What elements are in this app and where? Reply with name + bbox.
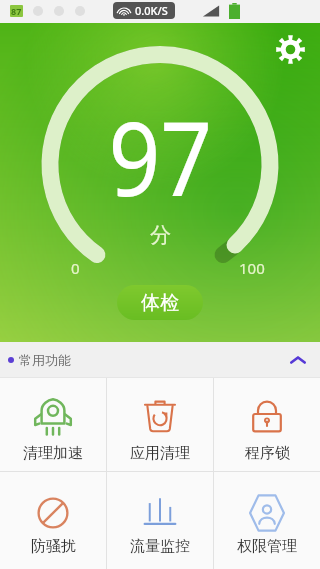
button[interactable]: 应用清理 xyxy=(107,378,213,471)
staticText: 分 xyxy=(150,222,171,248)
staticText: 应用清理 xyxy=(130,444,190,463)
staticText: 0.0K/S xyxy=(135,3,168,18)
staticText: 程序锁 xyxy=(245,444,290,463)
button[interactable]: 体检 xyxy=(117,285,203,320)
button[interactable]: 防骚扰 xyxy=(0,472,106,569)
staticText: 防骚扰 xyxy=(31,537,76,556)
staticText: 清理加速 xyxy=(23,444,83,463)
button[interactable]: Collapse xyxy=(284,346,312,374)
staticText: 100 xyxy=(239,258,265,278)
button[interactable]: 流量监控 xyxy=(107,472,213,569)
staticText: 97 xyxy=(108,87,212,197)
staticText: 流量监控 xyxy=(130,537,190,556)
button[interactable]: 常用功能 xyxy=(0,342,320,378)
staticText: 87 xyxy=(11,5,22,17)
button[interactable]: 清理加速 xyxy=(0,378,106,471)
staticText: 0 xyxy=(71,258,80,278)
staticText: 权限管理 xyxy=(237,537,297,556)
button[interactable]: Settings xyxy=(270,29,310,69)
button[interactable]: 程序锁 xyxy=(214,378,320,471)
staticText: 常用功能 xyxy=(19,352,71,368)
staticText: 体检 xyxy=(141,291,179,315)
button[interactable]: 权限管理 xyxy=(214,472,320,569)
